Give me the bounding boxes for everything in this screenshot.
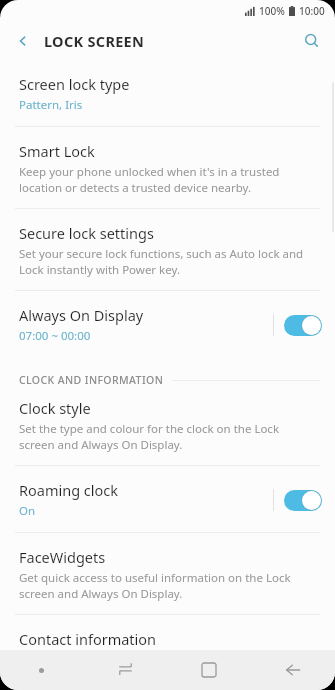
button[interactable]: Search — [295, 24, 329, 58]
staticText: Set your secure lock functions, such as … — [19, 246, 316, 277]
button[interactable]: Secure lock settings — [0, 209, 335, 290]
staticText: FaceWidgets — [19, 547, 106, 567]
button[interactable]: Home — [167, 650, 251, 690]
button[interactable]: Clock style — [0, 392, 335, 465]
button[interactable]: Back — [251, 650, 335, 690]
staticText: 10:00 — [299, 4, 325, 18]
staticText: Always On Display — [19, 305, 144, 325]
button[interactable]: Roaming clock — [0, 466, 335, 532]
button[interactable]: Always On Display — [0, 291, 335, 357]
staticText: CLOCK AND INFORMATION — [19, 373, 164, 387]
button[interactable]: Roaming clock toggle — [283, 488, 323, 512]
button[interactable]: Navigate up — [6, 24, 40, 58]
button[interactable]: Contact information — [0, 615, 335, 660]
staticText: LOCK SCREEN — [44, 31, 145, 51]
staticText: Get quick access to useful information o… — [19, 570, 316, 601]
staticText: Contact information — [19, 629, 157, 647]
button[interactable]: FaceWidgets — [0, 533, 335, 614]
staticText: Secure lock settings — [19, 223, 154, 243]
staticText: Screen lock type — [19, 74, 130, 94]
staticText: Pattern, Iris — [19, 97, 83, 113]
staticText: 07:00 ~ 00:00 — [19, 328, 91, 344]
staticText: Roaming clock — [19, 480, 119, 500]
staticText: Smart Lock — [19, 141, 95, 161]
button[interactable]: Screen lock type — [0, 60, 335, 126]
staticText: On — [19, 503, 36, 519]
button[interactable]: Recent apps — [83, 650, 167, 690]
button[interactable]: Always On Display toggle — [283, 313, 323, 337]
button[interactable]: Smart Lock — [0, 127, 335, 208]
staticText: Keep your phone unlocked when it's in a … — [19, 164, 316, 195]
staticText: Clock style — [19, 398, 91, 418]
staticText: 100% — [259, 4, 285, 18]
staticText: Set the type and colour for the clock on… — [19, 421, 316, 452]
